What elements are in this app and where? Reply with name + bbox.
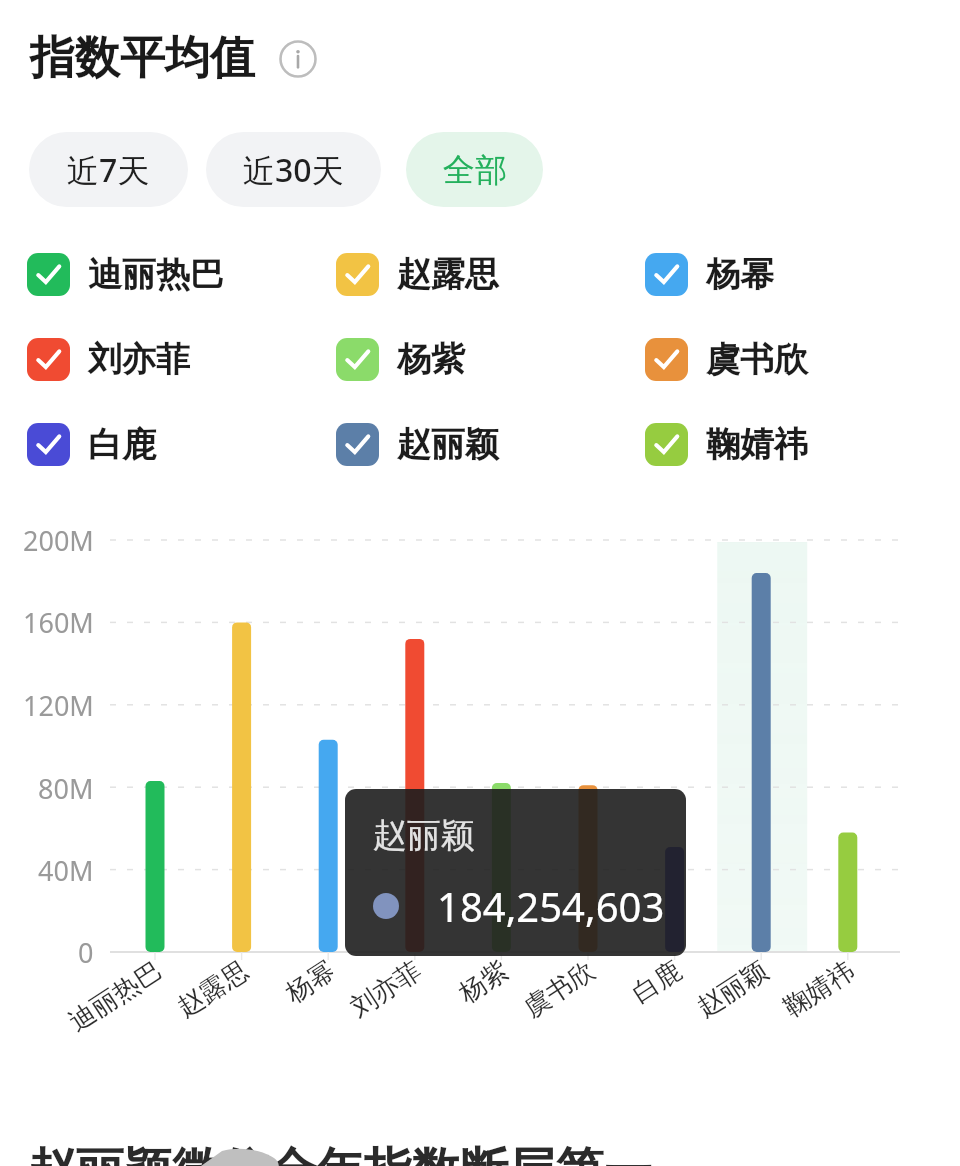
button[interactable]: 全部: [406, 132, 543, 207]
button[interactable]: 鞠婧祎: [645, 423, 808, 466]
button[interactable]: Info: [278, 39, 318, 79]
button[interactable]: 赵丽颖: [336, 423, 499, 466]
staticText: 杨紫: [397, 338, 465, 381]
staticText: 近30天: [243, 148, 344, 192]
staticText: 白鹿: [88, 423, 156, 466]
button[interactable]: 虞书欣: [645, 338, 808, 381]
staticText: 赵丽颖: [397, 423, 499, 466]
button[interactable]: 白鹿: [27, 423, 156, 466]
button[interactable]: 迪丽热巴: [27, 253, 224, 296]
button[interactable]: 赵丽颖微信全年指数断层第一: [0, 1120, 960, 1166]
staticText: 赵丽颖: [373, 814, 475, 857]
staticText: 鞠婧祎: [706, 423, 808, 466]
button[interactable]: 赵露思: [336, 253, 499, 296]
staticText: 迪丽热巴: [88, 253, 224, 296]
button[interactable]: 杨紫: [336, 338, 465, 381]
button[interactable]: 近30天: [206, 132, 381, 207]
staticText: 刘亦菲: [88, 338, 190, 381]
button[interactable]: 杨幂: [645, 253, 774, 296]
staticText: 全部: [443, 150, 507, 190]
button[interactable]: 刘亦菲: [27, 338, 190, 381]
staticText: 虞书欣: [706, 338, 808, 381]
staticText: 杨幂: [706, 253, 774, 296]
button[interactable]: 近7天: [29, 132, 188, 207]
staticText: 赵露思: [397, 253, 499, 296]
staticText: 指数平均值: [30, 30, 255, 87]
staticText: 184,254,603: [437, 879, 665, 933]
staticText: 赵丽颖微信全年指数断层第一: [28, 1141, 652, 1166]
button[interactable]: 赵丽颖: [345, 789, 686, 956]
staticText: 近7天: [67, 148, 150, 192]
